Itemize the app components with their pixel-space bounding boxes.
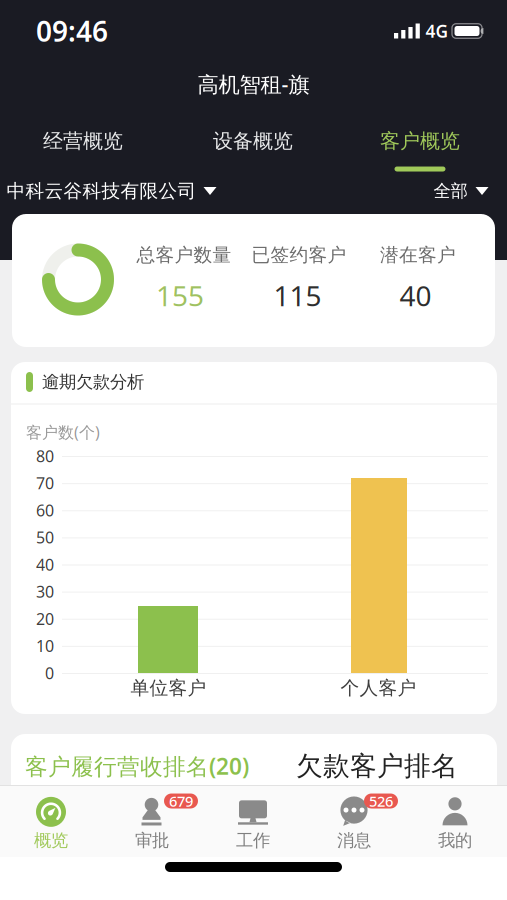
staticText: 20 [36,608,54,629]
staticText: 潜在客户 [380,243,456,266]
staticText: 单位客户 [130,676,206,699]
staticText: 115 [273,277,321,314]
staticText: 全部 [433,180,467,202]
staticText: 155 [156,277,204,314]
staticText: 60 [36,500,54,521]
staticText: 个人客户 [340,676,416,699]
button[interactable]: 中科云谷科技有限公司 [6,176,216,206]
staticText: 欠款客户排名 [296,750,458,782]
button[interactable]: 消息 [309,793,399,855]
staticText: 80 [36,445,54,467]
staticText: 客户概览 [380,129,460,153]
staticText: 总客户数量 [136,243,231,266]
staticText: 0 [45,662,54,684]
staticText: 客户履行营收排名(20) [25,751,249,781]
staticText: 工作 [236,830,270,851]
staticText: 70 [36,472,54,494]
staticText: 09:46 [36,12,108,50]
staticText: 679 [169,791,193,811]
button[interactable]: 工作 [208,793,298,855]
staticText: 40 [399,277,431,314]
staticText: 审批 [135,830,169,851]
button[interactable]: 经营概览 [13,121,153,161]
staticText: 4G [425,19,448,42]
staticText: 客户数(个) [26,421,100,443]
staticText: 设备概览 [213,129,293,153]
staticText: 概览 [34,830,68,851]
staticText: 30 [36,581,54,602]
staticText: 40 [36,554,54,575]
staticText: 50 [36,527,54,548]
staticText: 526 [369,791,393,811]
staticText: 我的 [438,830,472,851]
button[interactable]: 概览 [6,793,96,855]
staticText: 中科云谷科技有限公司 [6,179,196,202]
button[interactable]: 审批 [107,793,197,855]
staticText: 逾期欠款分析 [42,371,144,393]
button[interactable]: 客户概览 [350,121,490,161]
button[interactable]: 客户履行营收排名(20) [25,746,249,786]
staticText: 消息 [337,830,371,851]
staticText: 10 [36,635,54,656]
button[interactable]: 全部 [433,176,488,206]
button[interactable]: 欠款客户排名 [296,746,458,786]
staticText: 高机智租-旗 [197,70,309,98]
staticText: 经营概览 [43,129,123,153]
button[interactable]: 设备概览 [183,121,323,161]
button[interactable]: 我的 [410,793,500,855]
staticText: 已签约客户 [251,243,346,266]
